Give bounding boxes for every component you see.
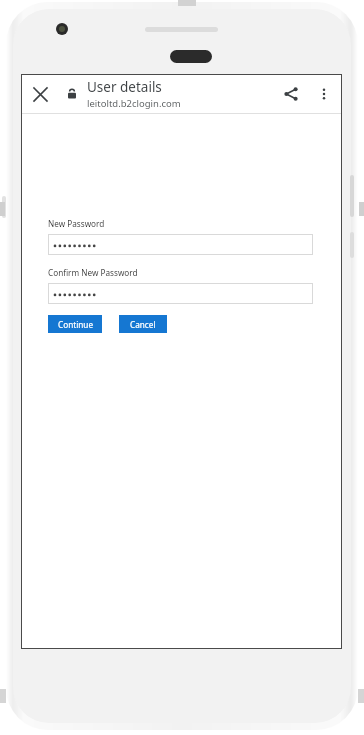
staticText: leitoltd.b2clogin.com (87, 97, 181, 110)
staticText: Continue (58, 319, 93, 330)
button[interactable]: User details (87, 78, 274, 110)
button[interactable]: Share (274, 77, 308, 111)
staticText: Cancel (130, 319, 156, 330)
button[interactable] (48, 283, 313, 304)
button[interactable] (48, 234, 313, 255)
button[interactable]: Cancel (119, 315, 167, 333)
button[interactable]: More options (308, 78, 340, 110)
staticText: User details (87, 78, 162, 96)
staticText: Confirm New Password (48, 267, 138, 278)
staticText: New Password (48, 218, 105, 229)
button[interactable]: Close (21, 75, 59, 113)
button[interactable]: Continue (48, 315, 102, 333)
